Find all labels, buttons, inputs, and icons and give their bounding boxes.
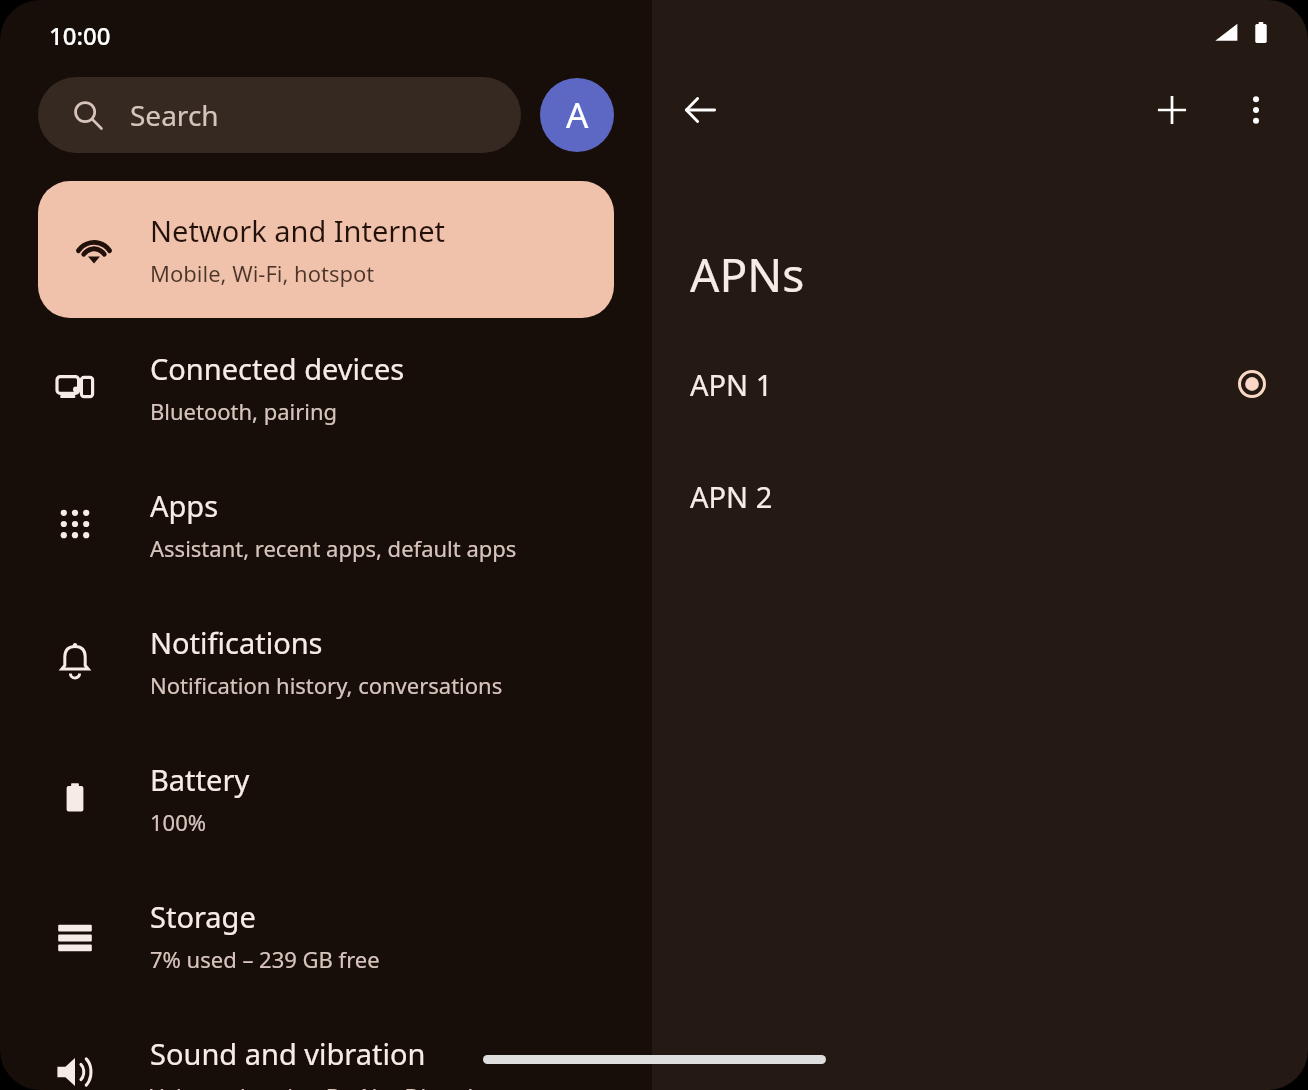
button[interactable]: Back <box>670 80 730 140</box>
staticText: 100% <box>150 807 207 837</box>
button[interactable]: Apps <box>0 468 652 580</box>
button[interactable]: Add APN <box>1142 80 1202 140</box>
staticText: Notification history, conversations <box>150 670 503 700</box>
staticText: Network and Internet <box>150 211 446 250</box>
staticText: Bluetooth, pairing <box>150 396 338 426</box>
staticText: Volume, haptics, Do Not Disturb <box>150 1081 481 1090</box>
button[interactable]: APN 1 <box>652 345 1308 423</box>
staticText: Search <box>130 96 219 134</box>
staticText: Connected devices <box>150 349 405 388</box>
staticText: Apps <box>150 486 219 525</box>
staticText: Sound and vibration <box>150 1034 426 1073</box>
button[interactable]: Network and Internet <box>38 181 614 318</box>
staticText: APN 1 <box>690 365 773 404</box>
staticText: Assistant, recent apps, default apps <box>150 533 517 563</box>
staticText: Storage <box>150 897 256 936</box>
button[interactable]: More options <box>1226 80 1286 140</box>
staticText: Mobile, Wi-Fi, hotspot <box>150 258 375 288</box>
staticText: 10:00 <box>49 19 111 52</box>
button[interactable]: Connected devices <box>0 331 652 443</box>
staticText: APN 2 <box>690 477 773 516</box>
staticText: Notifications <box>150 623 323 662</box>
button[interactable]: Battery <box>0 742 652 854</box>
staticText: APNs <box>690 243 805 306</box>
staticText: 7% used – 239 GB free <box>150 944 380 974</box>
button[interactable]: Search <box>38 77 521 153</box>
button[interactable]: Notifications <box>0 605 652 717</box>
button[interactable]: Storage <box>0 879 652 991</box>
button[interactable]: APN 2 <box>652 457 1308 535</box>
button[interactable]: Account <box>540 78 614 152</box>
staticText: A <box>566 91 589 139</box>
staticText: Battery <box>150 760 250 799</box>
button[interactable]: Sound and vibration <box>0 1016 652 1090</box>
